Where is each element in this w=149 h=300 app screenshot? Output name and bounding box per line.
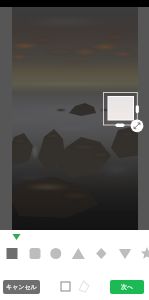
button[interactable]: Sticker	[74, 277, 92, 295]
staticText: キャンセル	[6, 283, 37, 291]
staticText: 次へ	[121, 283, 134, 291]
button[interactable]: キャンセル	[3, 280, 40, 294]
button[interactable]: 次へ	[110, 280, 144, 294]
button[interactable]: Frame	[56, 277, 74, 295]
other: Selected sticker	[0, 7, 149, 230]
